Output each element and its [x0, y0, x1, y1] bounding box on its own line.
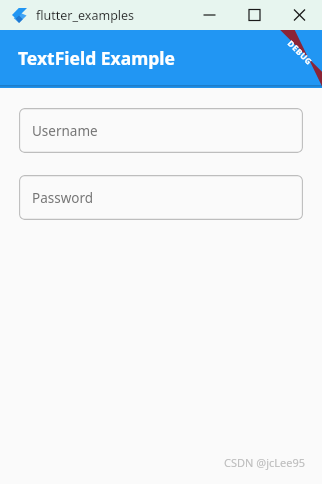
staticText: DEBUG — [286, 38, 315, 67]
staticText: Password — [32, 189, 94, 207]
button[interactable]: Close — [277, 0, 322, 30]
staticText: TextField Example — [18, 46, 175, 70]
button[interactable]: Minimize — [187, 0, 232, 30]
staticText: CSDN @jcLee95 — [224, 455, 306, 470]
button[interactable]: Maximize — [232, 0, 277, 30]
staticText: Username — [32, 122, 98, 140]
staticText: flutter_examples — [36, 7, 135, 24]
button[interactable]: Username — [19, 108, 303, 153]
button[interactable]: Password — [19, 175, 303, 220]
